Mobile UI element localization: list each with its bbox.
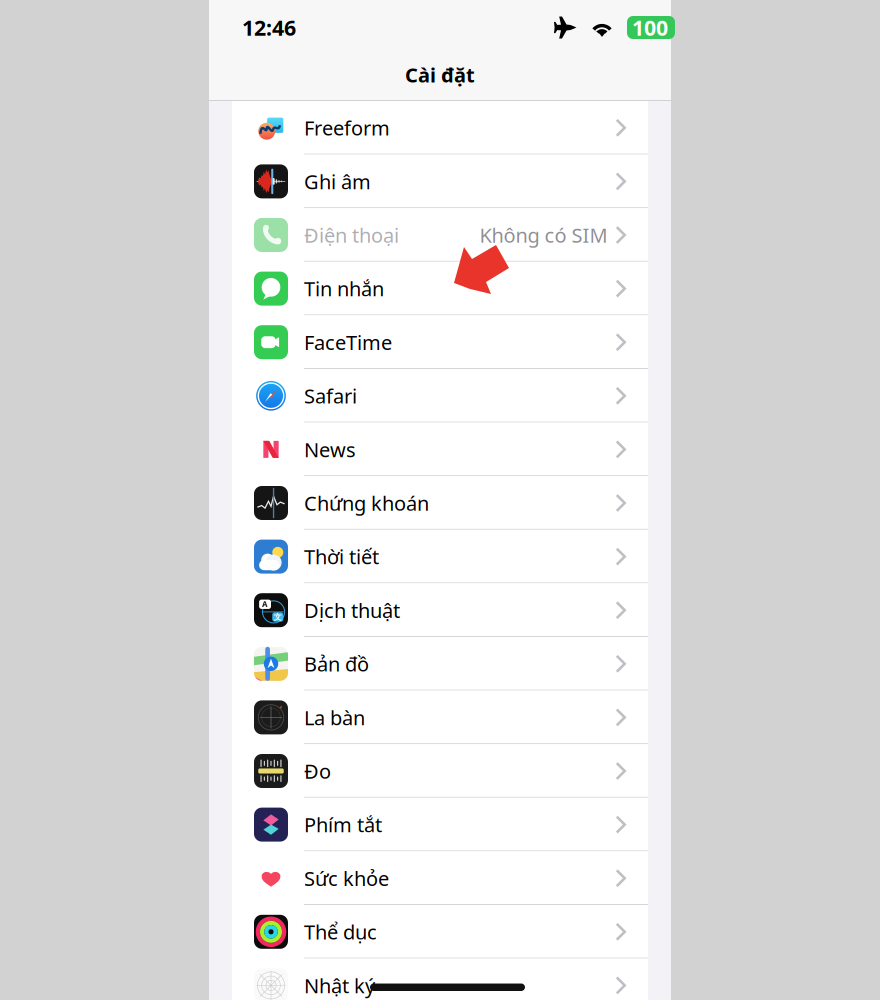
staticText: Đo: [304, 758, 331, 784]
staticText: La bàn: [304, 704, 365, 731]
button[interactable]: A: [232, 583, 648, 637]
button[interactable]: FaceTime: [232, 315, 648, 369]
button[interactable]: Ghi âm: [232, 155, 648, 208]
staticText: 文: [274, 612, 282, 622]
staticText: 100: [632, 13, 668, 42]
staticText: FaceTime: [304, 329, 392, 355]
staticText: Freeform: [304, 114, 390, 141]
staticText: Thể dục: [304, 918, 377, 945]
staticText: Tin nhắn: [304, 275, 384, 302]
button[interactable]: La bàn: [232, 691, 648, 744]
staticText: Không có SIM: [479, 222, 607, 248]
button[interactable]: Phím tắt: [232, 798, 648, 851]
button[interactable]: Tin nhắn: [232, 262, 648, 315]
staticText: Chứng khoán: [304, 490, 429, 516]
button[interactable]: Thể dục: [232, 905, 648, 959]
button[interactable]: Bản đồ: [232, 637, 648, 691]
button[interactable]: Điện thoại: [232, 208, 648, 262]
staticText: Safari: [304, 382, 357, 409]
staticText: A: [262, 599, 268, 609]
button[interactable]: Sức khỏe: [232, 851, 648, 905]
staticText: News: [304, 436, 356, 463]
staticText: Phím tắt: [304, 811, 382, 838]
staticText: Nhật ký: [304, 972, 375, 999]
staticText: 12:46: [242, 13, 296, 42]
staticText: Dịch thuật: [304, 597, 400, 623]
button[interactable]: News: [232, 423, 648, 476]
button[interactable]: Freeform: [232, 101, 648, 155]
staticText: Sức khỏe: [304, 865, 389, 891]
button[interactable]: Safari: [232, 369, 648, 423]
staticText: Cài đặt: [405, 61, 475, 88]
staticText: Bản đồ: [304, 650, 369, 677]
button[interactable]: Thời tiết: [232, 530, 648, 583]
staticText: Ghi âm: [304, 168, 371, 195]
button[interactable]: Nhật ký: [232, 959, 648, 1000]
button[interactable]: Đo: [232, 744, 648, 798]
staticText: Thời tiết: [304, 543, 379, 570]
staticText: Điện thoại: [304, 222, 399, 248]
button[interactable]: Chứng khoán: [232, 476, 648, 530]
